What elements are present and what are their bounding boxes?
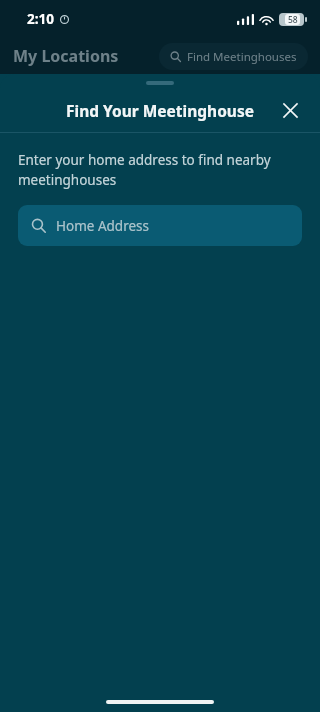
button[interactable]: Close	[272, 92, 308, 128]
staticText: Enter your home address to find nearby m…	[18, 151, 302, 189]
staticText: My Locations	[13, 45, 119, 67]
staticText: Home Address	[56, 217, 150, 235]
staticText: 2:10	[27, 10, 54, 28]
staticText: Find Your Meetinghouse	[66, 100, 254, 121]
staticText: 58	[288, 14, 298, 25]
staticText: Find Meetinghouses	[187, 49, 297, 65]
button[interactable]: Find Meetinghouses	[159, 43, 308, 70]
button[interactable]: Home Address	[18, 205, 302, 246]
